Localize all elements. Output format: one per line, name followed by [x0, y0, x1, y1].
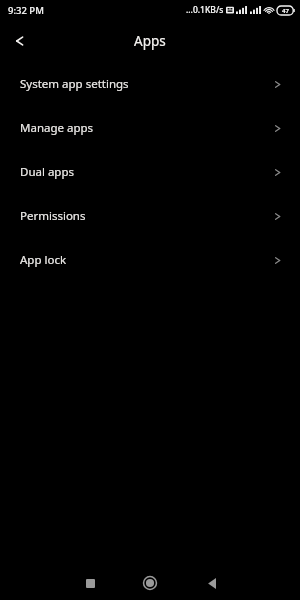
button[interactable]: System app settings [0, 62, 300, 106]
staticText: Dual apps [20, 164, 272, 180]
staticText: Permissions [20, 208, 272, 224]
staticText: ...0.1KB/s [186, 4, 224, 16]
button[interactable]: Back [196, 567, 228, 599]
staticText: Manage apps [20, 120, 272, 136]
staticText: App lock [20, 252, 272, 268]
staticText: 9:32 PM [8, 4, 44, 17]
button[interactable]: Permissions [0, 194, 300, 238]
staticText: 47 [282, 7, 289, 15]
button[interactable]: Recent apps [74, 567, 106, 599]
button[interactable]: Home [134, 567, 166, 599]
button[interactable]: Back [0, 21, 40, 61]
button[interactable]: App lock [0, 238, 300, 282]
button[interactable]: Manage apps [0, 106, 300, 150]
button[interactable]: Dual apps [0, 150, 300, 194]
staticText: System app settings [20, 76, 272, 92]
staticText: Apps [134, 32, 166, 50]
